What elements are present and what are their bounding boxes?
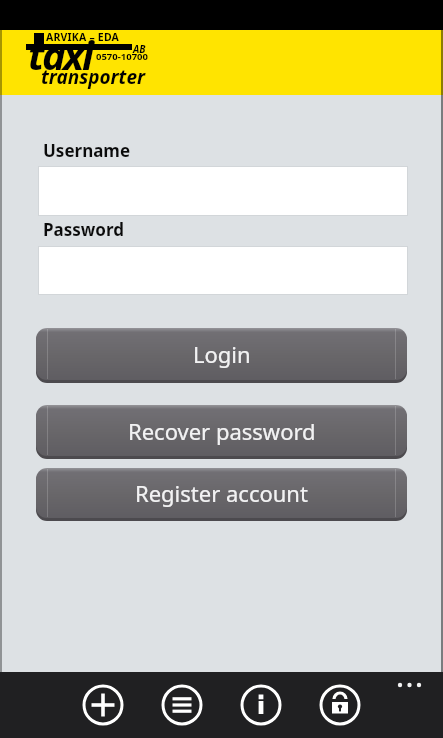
staticText: Login — [193, 339, 251, 369]
button[interactable] — [239, 683, 283, 727]
button[interactable] — [38, 166, 408, 216]
button[interactable] — [38, 246, 408, 295]
button[interactable]: Register account — [36, 468, 407, 518]
staticText: Password — [43, 218, 124, 241]
staticText: AB — [133, 42, 146, 56]
staticText: Register account — [135, 478, 308, 508]
button[interactable] — [160, 683, 204, 727]
button[interactable] — [81, 683, 125, 727]
staticText: Username — [43, 139, 131, 162]
staticText: ARVIKA – EDA — [46, 30, 120, 44]
button[interactable]: Login — [36, 328, 407, 380]
button[interactable]: Recover password — [36, 405, 407, 456]
staticText: taxi — [28, 27, 92, 81]
button[interactable] — [318, 683, 362, 727]
staticText: Recover password — [128, 416, 316, 446]
staticText: transporter — [41, 64, 146, 90]
staticText: 0570-10700 — [96, 50, 148, 63]
